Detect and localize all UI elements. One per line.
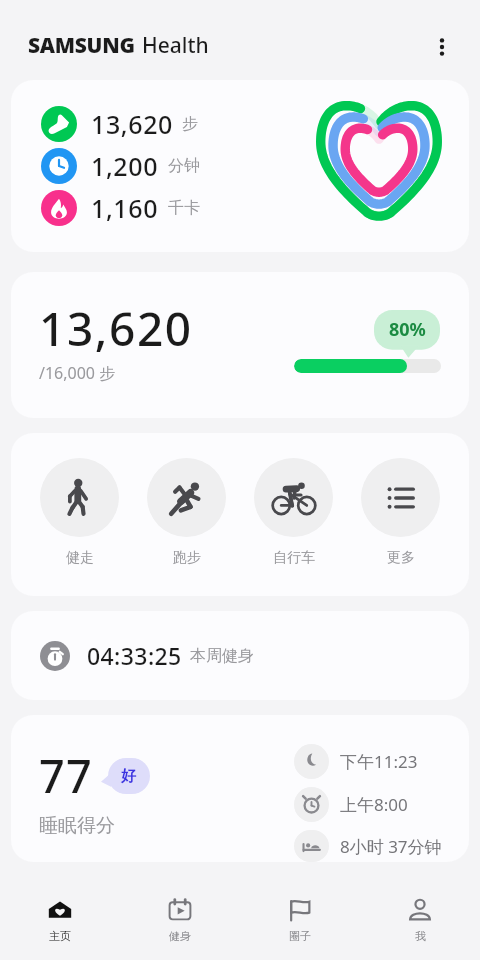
staticText: 千卡	[168, 198, 200, 218]
staticText: 好	[121, 767, 136, 786]
staticText: 本周健身	[190, 646, 254, 666]
staticText: 13,620	[91, 107, 173, 141]
staticText: 我	[415, 929, 426, 943]
staticText: 分钟	[168, 156, 200, 176]
staticText: 下午11:23	[340, 750, 418, 773]
staticText: 8小时 37分钟	[340, 835, 442, 858]
staticText: 主页	[49, 929, 71, 943]
staticText: 跑步	[173, 549, 201, 567]
button[interactable]: 13,620	[11, 80, 469, 252]
staticText: 自行车	[273, 549, 315, 567]
staticText: 04:33:25	[87, 640, 182, 671]
button[interactable]: 我	[360, 891, 480, 949]
button[interactable]: 健走	[40, 458, 119, 567]
staticText: /16,000 步	[39, 362, 116, 384]
button[interactable]: 13,620	[11, 272, 469, 418]
button[interactable]: 更多	[361, 458, 440, 567]
staticText: 圈子	[289, 929, 311, 943]
staticText: 步	[182, 114, 198, 134]
staticText: SAMSUNG	[28, 31, 135, 60]
staticText: 健走	[66, 549, 94, 567]
staticText: 健身	[169, 929, 191, 943]
staticText: 更多	[387, 549, 415, 567]
staticText: 上午8:00	[340, 793, 408, 816]
staticText: 1,200	[91, 149, 159, 183]
button[interactable]: 主页	[0, 891, 120, 949]
button[interactable]: 健身	[120, 891, 240, 949]
staticText: 77	[39, 745, 93, 806]
button[interactable]: 04:33:25	[11, 611, 469, 700]
button[interactable]: More options	[425, 30, 458, 63]
button[interactable]: 圈子	[240, 891, 360, 949]
staticText: 1,160	[91, 191, 159, 225]
staticText: 睡眠得分	[39, 814, 115, 838]
staticText: 80%	[389, 317, 426, 342]
button[interactable]: 跑步	[147, 458, 226, 567]
button[interactable]: 77	[11, 715, 469, 862]
button[interactable]: 自行车	[254, 458, 333, 567]
staticText: 13,620	[39, 297, 193, 360]
staticText: Health	[142, 31, 209, 60]
button[interactable]: 健走	[11, 433, 469, 596]
